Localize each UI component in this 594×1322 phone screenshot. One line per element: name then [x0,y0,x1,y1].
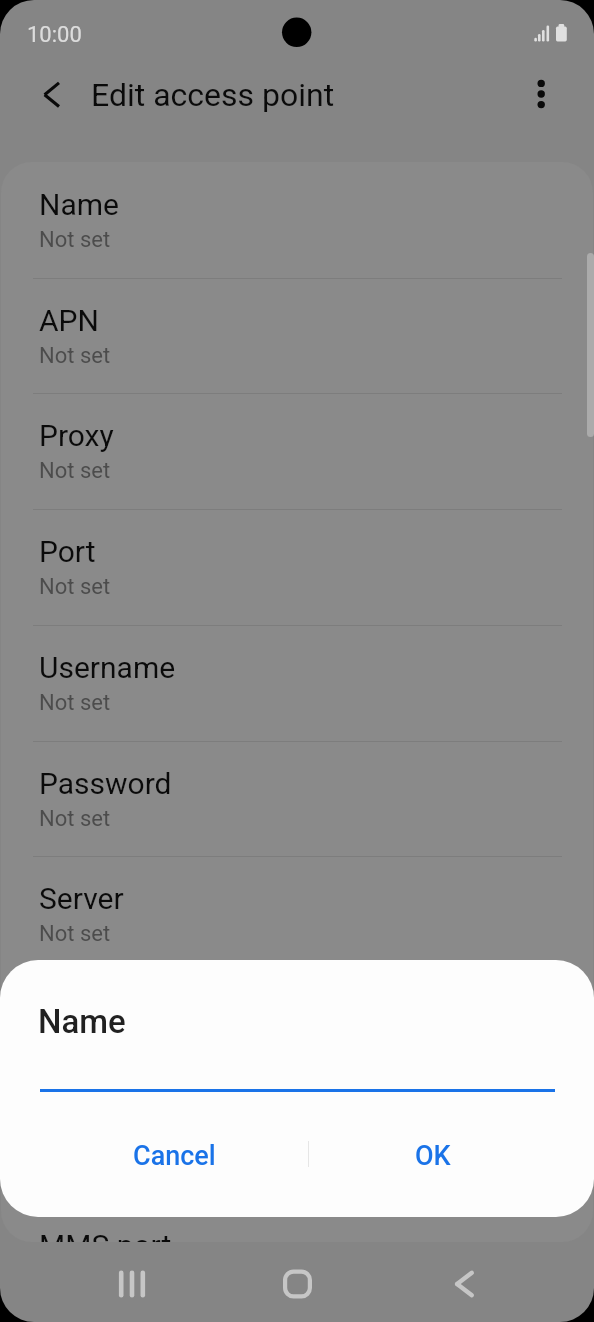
staticText: Not set [39,458,111,484]
button[interactable]: Port [1,509,593,625]
button[interactable]: Navigate up [24,67,79,122]
button[interactable]: APN [1,278,593,394]
button[interactable]: Proxy [1,393,593,509]
staticText: Edit access point [91,76,335,114]
button[interactable]: MMS proxy [1,1088,593,1204]
staticText: Not set [39,574,111,600]
staticText: Cancel [133,1140,216,1172]
button[interactable]: Username [1,625,593,741]
staticText: Not set [39,227,111,253]
button[interactable]: Back [380,1251,545,1317]
staticText: Server [39,881,124,916]
staticText: Name [38,1002,126,1041]
staticText: Not set [39,806,111,832]
staticText: Not set [39,921,111,947]
button[interactable]: Password [1,741,593,857]
button[interactable]: More options [514,67,569,122]
staticText: Port [39,534,96,569]
staticText: Password [39,766,172,801]
button[interactable]: Name [1,162,593,278]
button[interactable]: Home [215,1251,380,1317]
staticText: Not set [39,343,111,369]
staticText: MMS port [39,1228,172,1242]
staticText: MMSC [39,997,129,1032]
button[interactable]: Cancel [94,1127,254,1185]
staticText: Not set [39,690,111,716]
button[interactable]: MMS port [1,1203,593,1242]
staticText: APN [39,303,99,338]
button[interactable]: Recent apps [49,1251,215,1317]
staticText: Name [39,187,119,222]
staticText: OK [415,1140,451,1172]
button[interactable]: OK [353,1127,513,1185]
button[interactable]: MMSC [1,972,593,1088]
staticText: Proxy [39,418,114,453]
staticText: MMS proxy [39,1113,190,1148]
staticText: 10:00 [27,22,82,48]
staticText: Username [39,650,176,685]
button[interactable]: Server [1,856,593,972]
